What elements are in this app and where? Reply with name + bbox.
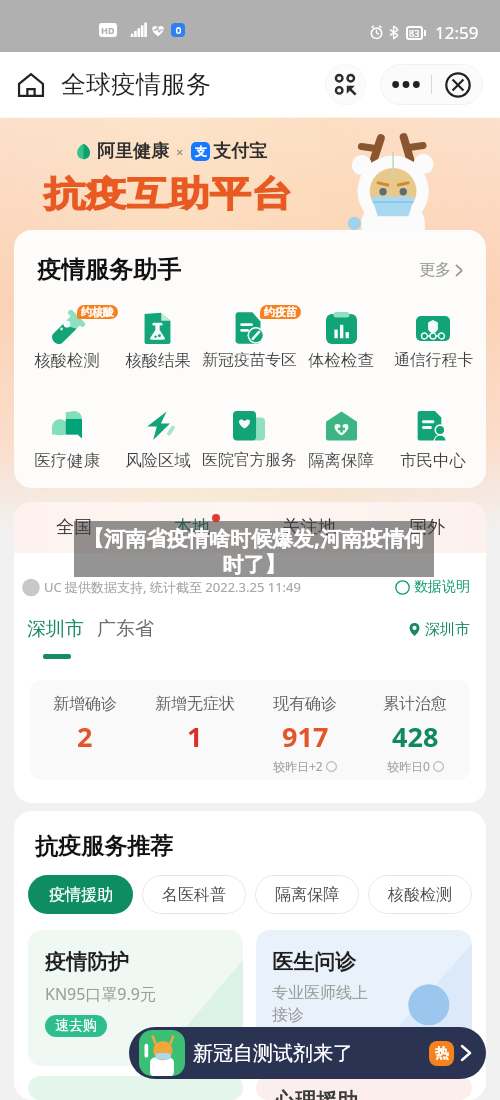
button[interactable]: 广东省	[97, 617, 154, 641]
staticText: 医疗健康	[34, 450, 100, 471]
staticText: 本地	[174, 516, 210, 539]
staticText: HD	[101, 24, 115, 36]
other: Open	[461, 1045, 471, 1061]
staticText: 速去购	[55, 1017, 97, 1035]
staticText: 通信行程卡	[394, 350, 473, 370]
button[interactable]: 体检检查	[295, 311, 387, 371]
staticText: 关注地	[282, 516, 336, 539]
staticText: 全球疫情服务	[61, 69, 211, 100]
staticText: 支付宝	[213, 140, 267, 163]
staticText: 隔离保障	[275, 885, 339, 905]
button[interactable]: 医院官方服务	[203, 411, 295, 470]
button[interactable]: 深圳市	[27, 617, 84, 641]
staticText: 更多	[419, 260, 451, 280]
button[interactable]: 新冠自测试剂来了	[129, 1027, 486, 1079]
staticText: 市民中心	[400, 450, 466, 471]
staticText: 1	[187, 718, 203, 755]
staticText: 累计治愈	[383, 694, 447, 714]
staticText: 核酸检测	[388, 885, 452, 905]
button[interactable]: Close	[432, 64, 483, 105]
staticText: 全国	[56, 516, 92, 539]
staticText: 深圳市	[425, 620, 470, 639]
staticText: 428	[392, 718, 439, 755]
button[interactable]: 隔离保障	[295, 411, 387, 471]
button[interactable]: More options	[380, 64, 431, 105]
button[interactable]: 核酸检测	[368, 875, 472, 914]
staticText: 心理援助	[274, 1088, 358, 1100]
staticText: 新增无症状	[155, 694, 235, 714]
button[interactable]: 疫情援助	[28, 875, 133, 914]
staticText: 专业医师线上 接诊	[272, 983, 368, 1024]
button[interactable]: 本地	[133, 502, 250, 553]
staticText: 较昨日0	[387, 758, 430, 774]
button[interactable]: 名医科普	[142, 875, 246, 914]
staticText: 国外	[409, 516, 445, 539]
staticText: 医生问诊	[272, 949, 356, 975]
staticText: 12:59	[435, 21, 479, 44]
staticText: 新冠自测试剂来了	[193, 1041, 353, 1066]
button[interactable]	[28, 1076, 243, 1100]
staticText: 较昨日+2	[273, 758, 323, 774]
button[interactable]: 风险区域	[112, 411, 203, 471]
button[interactable]: 医疗健康	[21, 411, 112, 471]
staticText: KN95口罩9.9元	[45, 983, 156, 1005]
button[interactable]: Scan	[325, 64, 366, 105]
staticText: 现有确诊	[273, 694, 337, 714]
button[interactable]: 市民中心	[387, 411, 479, 471]
staticText: 名医科普	[162, 885, 226, 905]
staticText: 疫情服务助手	[37, 255, 181, 285]
staticText: 约核酸	[81, 305, 114, 319]
staticText: 疫情援助	[49, 885, 113, 905]
staticText: 83	[409, 27, 420, 39]
staticText: 核酸结果	[125, 350, 191, 371]
staticText: 风险区域	[125, 450, 191, 471]
button[interactable]: 疫情防护	[28, 930, 243, 1066]
button[interactable]: 更多	[415, 256, 467, 284]
button[interactable]: 隔离保障	[255, 875, 359, 914]
button[interactable]: 心理援助	[256, 1076, 472, 1100]
staticText: 【河南省疫情啥时候爆发,河南疫情何时了】	[74, 524, 434, 577]
button[interactable]: 数据说明	[395, 578, 470, 596]
staticText: 支	[195, 144, 207, 159]
staticText: 阿里健康	[97, 140, 169, 163]
staticText: 疫情防护	[45, 949, 129, 975]
staticText: 隔离保障	[308, 450, 374, 471]
button[interactable]: 国外	[367, 502, 486, 553]
staticText: 抗疫服务推荐	[35, 832, 173, 861]
staticText: 约疫苗	[264, 305, 297, 319]
button[interactable]: 医生问诊	[256, 930, 472, 1066]
button[interactable]: 全国	[14, 502, 133, 553]
staticText: ×	[176, 143, 184, 161]
button[interactable]: 关注地	[250, 502, 367, 553]
staticText: 917	[282, 718, 329, 755]
button[interactable]: Home	[18, 72, 44, 98]
staticText: 热	[435, 1045, 449, 1063]
staticText: 新冠疫苗专区	[202, 350, 297, 370]
button[interactable]: 约核酸	[21, 311, 112, 371]
button[interactable]: 通信行程卡	[387, 311, 479, 370]
staticText: 新增确诊	[53, 694, 117, 714]
staticText: 核酸检测	[34, 350, 100, 371]
staticText: 医院官方服务	[202, 450, 297, 470]
button[interactable]: 约疫苗	[203, 311, 295, 370]
staticText: 2	[77, 718, 93, 755]
button[interactable]: 深圳市	[408, 620, 470, 639]
staticText: 抗疫互助平台	[44, 172, 293, 217]
staticText: 体检检查	[308, 350, 374, 371]
staticText: UC 提供数据支持, 统计截至 2022.3.25 11:49	[44, 578, 301, 596]
staticText: 数据说明	[414, 578, 470, 596]
button[interactable]: 核酸结果	[112, 311, 203, 371]
